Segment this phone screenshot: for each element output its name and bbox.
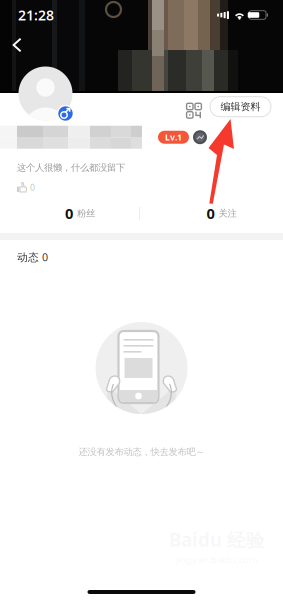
staticText: 还没有发布动态，快去发布吧～ [78,446,204,458]
button[interactable]: 0 [0,200,160,226]
button[interactable]: QR code [181,90,207,124]
staticText: 0 [206,203,214,223]
staticText: 这个人很懒，什么都没留下 [17,162,125,173]
staticText: 粉丝 [77,207,95,219]
staticText: 21:28 [18,5,54,25]
staticText: 关注 [218,207,236,219]
staticText: 动态 0 [17,250,48,264]
staticText: Lv.1 [165,131,182,143]
staticText: 0 [65,203,73,223]
button[interactable]: Back [0,30,34,60]
staticText: Baidu 经验 [169,527,265,552]
staticText: 0 [30,181,35,193]
button[interactable]: 0 [160,200,283,226]
staticText: 编辑资料 [220,100,260,113]
button[interactable]: 编辑资料 [210,97,271,117]
